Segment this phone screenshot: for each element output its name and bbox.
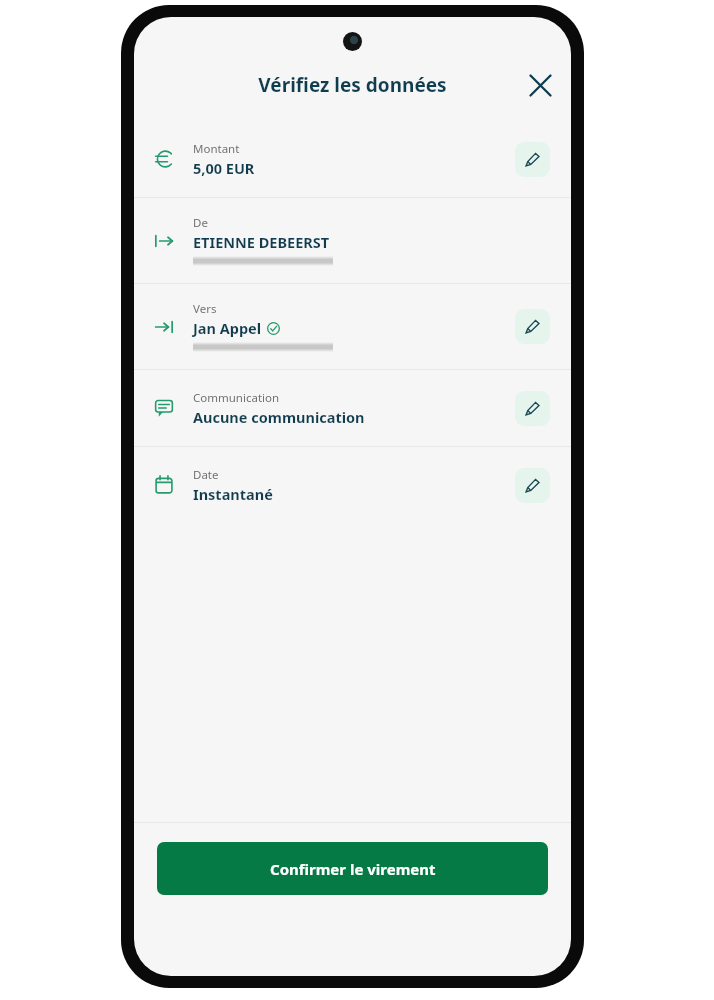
button[interactable]: Vers xyxy=(134,284,571,369)
staticText: 5,00 EUR xyxy=(193,158,255,178)
button[interactable]: De xyxy=(134,198,571,283)
staticText: Confirmer le virement xyxy=(270,859,436,879)
staticText: Vérifiez les données xyxy=(258,72,447,98)
staticText: Jan Appel xyxy=(193,318,262,338)
button[interactable]: Montant xyxy=(134,121,571,197)
button[interactable]: Confirmer le virement xyxy=(157,842,548,895)
staticText: Instantané xyxy=(193,484,273,504)
staticText: ETIENNE DEBEERST xyxy=(193,232,330,252)
staticText: Aucune communication xyxy=(193,407,365,427)
staticText: Montant xyxy=(193,141,240,157)
button[interactable]: Modifier Vers xyxy=(515,309,550,344)
button[interactable]: Communication xyxy=(134,370,571,446)
button[interactable]: Fermer xyxy=(517,62,563,108)
staticText: Date xyxy=(193,467,219,483)
button[interactable]: Modifier Communication xyxy=(515,391,550,426)
button[interactable]: Modifier Date xyxy=(515,468,550,503)
staticText: Communication xyxy=(193,390,280,406)
button[interactable]: Date xyxy=(134,447,571,523)
staticText: De xyxy=(193,215,208,231)
staticText: Vers xyxy=(193,301,217,317)
button[interactable]: Modifier Montant xyxy=(515,142,550,177)
